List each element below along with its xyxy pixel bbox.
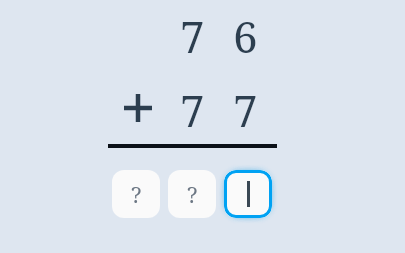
button[interactable]: Answer entry, empty [168,170,216,218]
staticText: 6 [233,6,258,66]
staticText: ? [187,179,198,209]
staticText: 7 [180,80,205,140]
button[interactable]: Answer entry, empty [112,170,160,218]
staticText: 7 [233,80,258,140]
button[interactable]: Answer entry, focused [224,170,272,218]
staticText: 7 [180,6,205,66]
staticText: ? [131,179,142,209]
